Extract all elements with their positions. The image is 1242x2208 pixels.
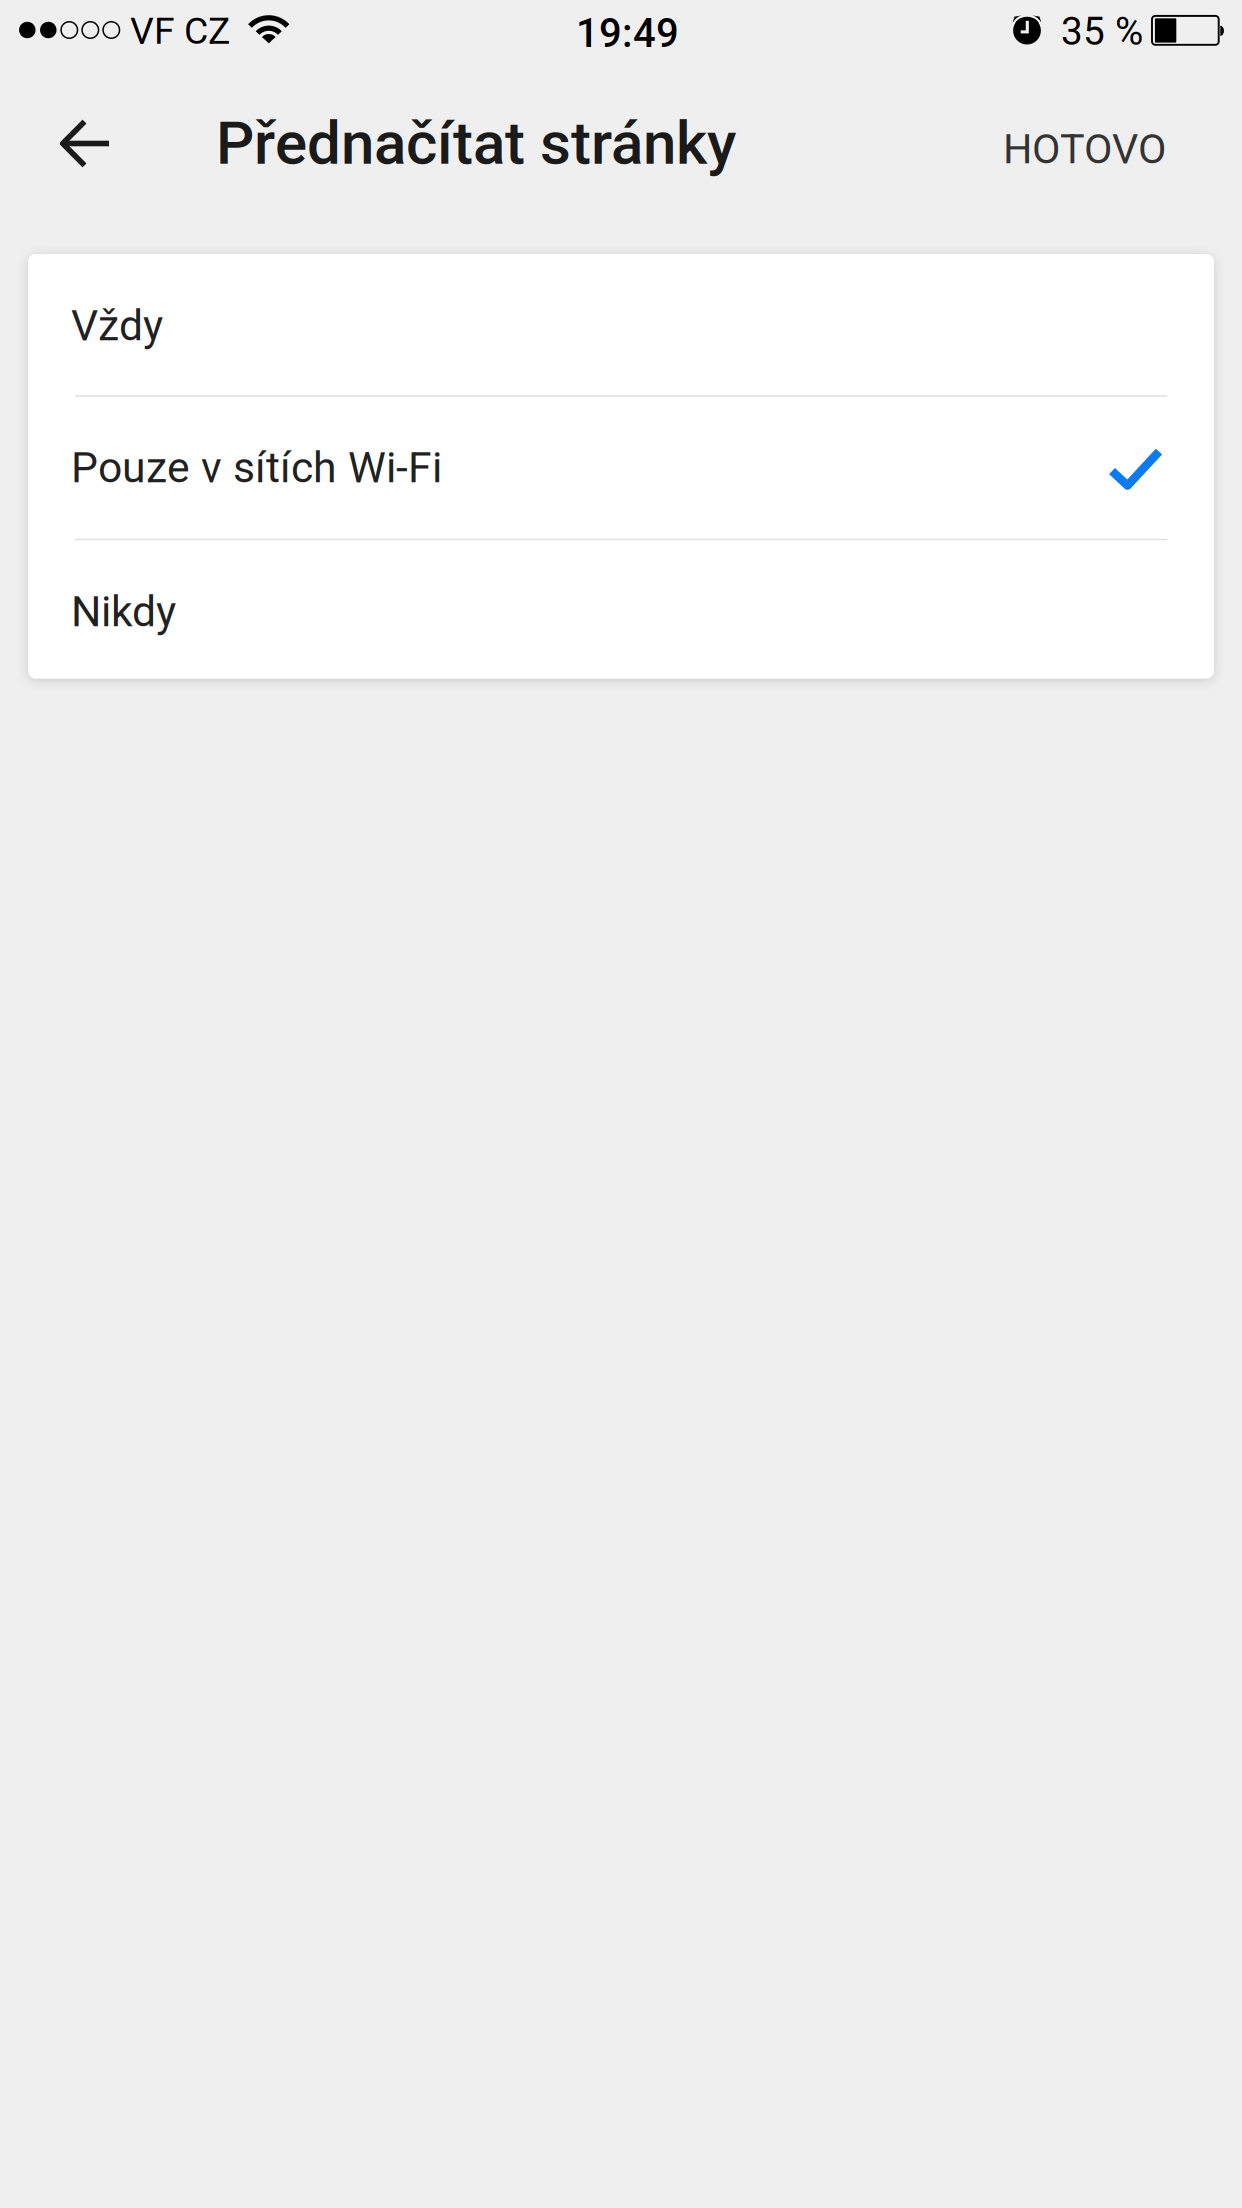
staticText: VF CZ: [130, 9, 230, 53]
staticText: 35 %: [1061, 9, 1143, 54]
staticText: 19:49: [576, 10, 679, 57]
staticText: HOTOVO: [1003, 125, 1166, 173]
staticText: Vždy: [71, 301, 163, 351]
button[interactable]: Vždy: [28, 254, 1214, 395]
staticText: Přednačítat stránky: [216, 108, 736, 178]
button[interactable]: HOTOVO: [959, 89, 1242, 209]
button[interactable]: Pouze v sítích Wi-Fi: [28, 395, 1214, 539]
button[interactable]: Nikdy: [28, 539, 1214, 679]
staticText: Nikdy: [71, 587, 176, 637]
staticText: Pouze v sítích Wi-Fi: [71, 442, 442, 492]
button[interactable]: Zpět: [0, 91, 154, 196]
